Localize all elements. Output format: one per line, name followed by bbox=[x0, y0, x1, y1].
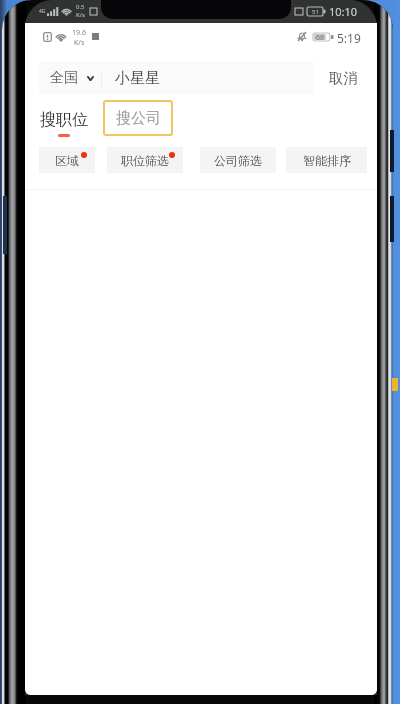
button[interactable]: 职位筛选 bbox=[107, 147, 183, 173]
button[interactable]: 全国 bbox=[39, 61, 314, 95]
staticText: 68 bbox=[316, 33, 325, 41]
staticText: 区域 bbox=[55, 153, 79, 168]
button[interactable]: 区域 bbox=[39, 147, 95, 173]
staticText: K/s bbox=[74, 38, 85, 48]
button[interactable]: 智能排序 bbox=[286, 147, 367, 173]
button[interactable]: 取消 bbox=[319, 61, 367, 95]
staticText: 公司筛选 bbox=[214, 153, 262, 168]
staticText: 0.5 bbox=[76, 3, 85, 11]
staticText: 5:19 bbox=[337, 30, 361, 46]
staticText: 取消 bbox=[329, 69, 358, 87]
staticText: 小星星 bbox=[115, 69, 160, 88]
staticText: 51 bbox=[312, 8, 319, 16]
button[interactable]: 公司筛选 bbox=[200, 147, 276, 173]
staticText: 智能排序 bbox=[303, 153, 351, 168]
staticText: 全国 bbox=[50, 69, 78, 87]
staticText: 10:10 bbox=[329, 4, 358, 19]
staticText: 职位筛选 bbox=[121, 153, 169, 168]
staticText: K/s bbox=[76, 11, 85, 19]
staticText: 搜职位 bbox=[40, 110, 88, 130]
button[interactable]: 搜职位 bbox=[38, 110, 90, 137]
other: Silent mode bbox=[297, 31, 307, 42]
staticText: 搜公司 bbox=[116, 109, 161, 128]
button[interactable]: 搜公司 bbox=[103, 100, 173, 136]
staticText: 4G bbox=[39, 8, 46, 15]
staticText: 19.6 bbox=[72, 28, 86, 38]
